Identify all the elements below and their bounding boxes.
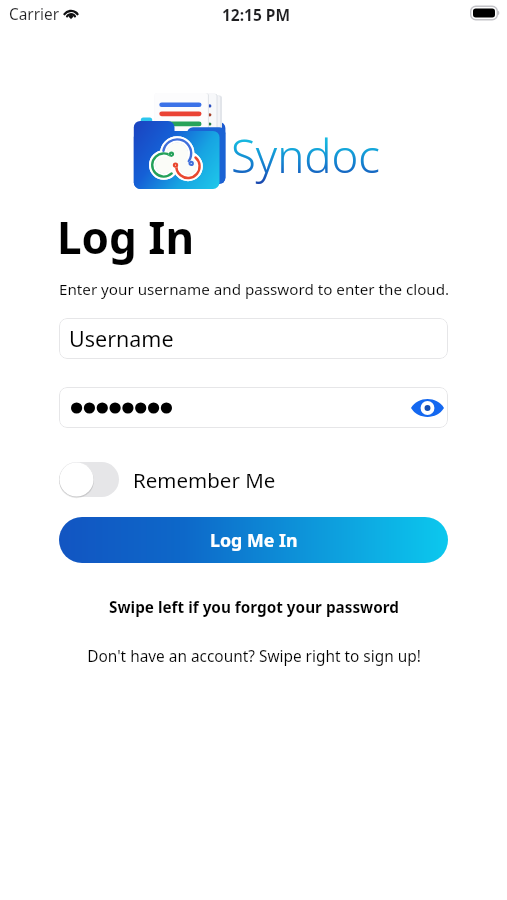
staticText: 12:15 PM [222,4,291,25]
button[interactable]: Show password [410,391,444,425]
button[interactable]: Show password [59,387,448,428]
button[interactable]: Username [59,318,448,359]
staticText: Enter your username and password to ente… [59,279,450,300]
staticText: Carrier [9,4,60,25]
button[interactable]: Remember Me toggle [59,462,119,497]
staticText: Syndoc [231,124,381,186]
staticText: Log In [57,207,195,267]
button[interactable]: Don't have an account? Swipe right to si… [87,646,421,667]
button[interactable]: Swipe left if you forgot your password [109,597,399,618]
button[interactable]: Log Me In [59,517,448,563]
staticText: Remember Me [133,466,276,494]
staticText: Log Me In [210,528,298,552]
staticText: Username [69,324,174,353]
